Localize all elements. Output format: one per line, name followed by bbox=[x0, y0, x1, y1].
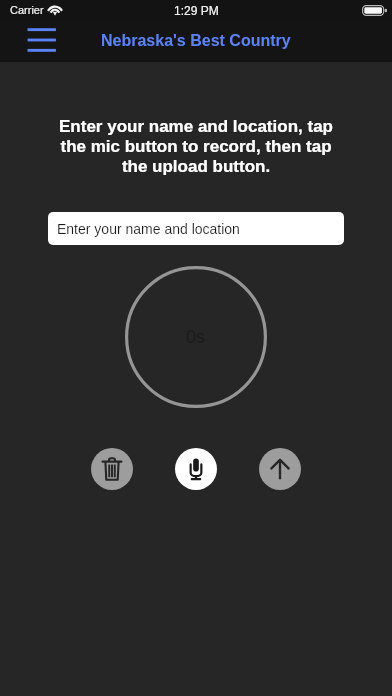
button[interactable]: Record bbox=[175, 448, 217, 490]
staticText: Carrier bbox=[10, 4, 44, 16]
button[interactable]: Upload recording bbox=[259, 448, 301, 490]
staticText: 1:29 PM bbox=[174, 4, 219, 17]
button[interactable]: Delete recording bbox=[91, 448, 133, 490]
staticText: Enter your name and location, tap the mi… bbox=[52, 117, 340, 175]
staticText: Nebraska's Best Country bbox=[101, 32, 291, 50]
button[interactable]: Enter your name and location bbox=[48, 212, 344, 245]
button[interactable]: Menu bbox=[29, 24, 63, 60]
staticText: Enter your name and location bbox=[57, 221, 240, 237]
staticText: 0s bbox=[186, 327, 206, 347]
